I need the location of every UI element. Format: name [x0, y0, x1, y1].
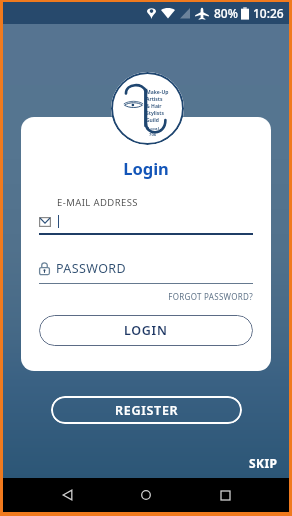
staticText: 706	[149, 132, 157, 138]
staticText: 80%	[214, 5, 238, 21]
staticText: Make-Up	[146, 89, 169, 96]
staticText: & Hair	[146, 103, 162, 110]
button[interactable]: Recents	[210, 480, 240, 510]
button[interactable]: REGISTER	[51, 396, 242, 424]
staticText: LOGIN	[124, 322, 168, 339]
staticText: Artists	[146, 96, 163, 103]
staticText: Stylists	[146, 110, 164, 117]
staticText: Guild	[146, 117, 160, 124]
staticText: REGISTER	[115, 402, 179, 419]
staticText: SKIP	[249, 455, 278, 471]
staticText: Login	[39, 157, 253, 179]
button[interactable]: Back	[52, 480, 82, 510]
staticText: E-MAIL ADDRESS	[57, 196, 138, 209]
button[interactable]: FORGOT PASSWORD?	[39, 291, 253, 302]
button[interactable]: Home	[131, 480, 161, 510]
staticText: PASSWORD	[56, 260, 127, 277]
staticText: 10:26	[253, 5, 284, 21]
button[interactable]: SKIP	[243, 453, 289, 473]
staticText: Local	[148, 126, 159, 132]
button[interactable]: LOGIN	[39, 315, 253, 346]
